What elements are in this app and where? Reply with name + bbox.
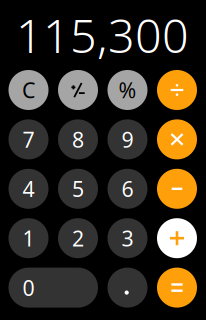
button[interactable]: Multiply (157, 119, 197, 159)
staticText: % (118, 76, 136, 104)
staticText: 7 (22, 125, 34, 153)
staticText: 9 (121, 125, 133, 153)
button[interactable]: Equals (157, 268, 197, 308)
staticText: 8 (72, 125, 84, 153)
button[interactable]: % (107, 70, 147, 110)
button[interactable]: 2 (58, 218, 98, 258)
button[interactable]: 0 (8, 268, 98, 308)
button[interactable]: 9 (107, 119, 147, 159)
button[interactable]: Add (157, 218, 197, 258)
button[interactable]: C (8, 70, 48, 110)
staticText: 4 (22, 175, 34, 203)
staticText: 6 (121, 175, 133, 203)
button[interactable]: 1 (8, 218, 48, 258)
button[interactable]: 6 (107, 169, 147, 209)
staticText: 5 (72, 175, 84, 203)
button[interactable]: 8 (58, 119, 98, 159)
button[interactable]: 3 (107, 218, 147, 258)
staticText: 0 (22, 273, 34, 302)
button[interactable]: Decimal point (107, 268, 147, 308)
staticText: 3 (121, 224, 133, 252)
button[interactable]: 4 (8, 169, 48, 209)
button[interactable]: Plus minus (58, 70, 98, 110)
button[interactable]: Divide (157, 70, 197, 110)
staticText: C (22, 76, 35, 104)
staticText: 115,300 (16, 4, 189, 66)
staticText: 2 (72, 224, 84, 252)
button[interactable]: Subtract (157, 169, 197, 209)
staticText: 1 (22, 224, 34, 252)
button[interactable]: 7 (8, 119, 48, 159)
button[interactable]: 5 (58, 169, 98, 209)
